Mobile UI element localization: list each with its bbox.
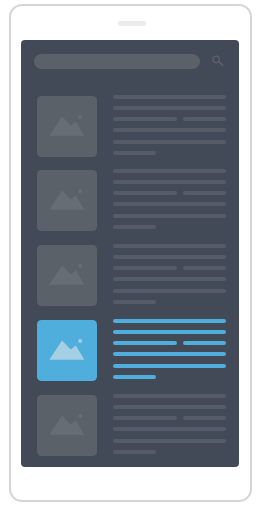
button[interactable]: List item 4 [21,319,239,394]
button[interactable]: Search [206,49,226,69]
button[interactable]: List item 2 [21,169,239,244]
button[interactable]: List item 1 [21,95,239,170]
button[interactable]: List item 5 [21,394,239,467]
button[interactable]: Search field [34,54,200,69]
button[interactable]: List item 3 [21,244,239,319]
